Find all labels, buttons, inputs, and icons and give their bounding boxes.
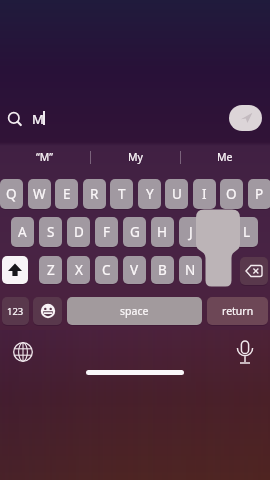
staticText: Y [146,185,154,203]
staticText: J [189,223,193,241]
staticText: F [103,223,111,241]
button[interactable]: B [151,256,174,284]
button[interactable]: C [95,256,118,284]
staticText: W [33,185,46,203]
button[interactable] [33,297,62,325]
button[interactable]: My [90,145,180,169]
staticText: I [202,185,207,203]
staticText: B [158,261,167,279]
staticText: P [255,185,264,203]
staticText: My [128,150,143,164]
button[interactable]: Me [180,145,270,169]
button[interactable] [240,257,268,285]
button[interactable] [229,105,262,131]
button[interactable]: X [67,256,90,284]
staticText: S [47,223,55,241]
button[interactable]: T [110,179,133,209]
staticText: L [243,223,251,241]
button[interactable] [2,256,28,284]
button[interactable]: Y [138,179,161,209]
button[interactable]: 123 [2,297,29,325]
button[interactable]: V [123,256,146,284]
button[interactable]: W [28,179,51,209]
staticText: “M” [36,150,54,164]
staticText: E [63,185,71,203]
button[interactable]: A [11,217,34,247]
button[interactable]: D [67,217,90,247]
staticText: V [130,261,139,279]
staticText: O [226,185,237,203]
button[interactable]: H [151,217,174,247]
staticText: space [120,304,149,318]
button[interactable]: Q [0,179,23,209]
staticText: Z [47,261,55,279]
staticText: N [185,261,196,279]
staticText: X [75,261,83,279]
button[interactable]: E [55,179,78,209]
button[interactable]: F [95,217,118,247]
button[interactable]: return [207,297,268,325]
staticText: U [172,185,182,203]
button[interactable] [235,339,255,366]
staticText: Q [6,185,17,203]
staticText: R [90,185,99,203]
staticText: Me [217,150,233,164]
button[interactable]: R [83,179,106,209]
staticText: T [118,185,126,203]
button[interactable]: L [235,217,258,247]
button[interactable]: N [179,256,202,284]
button[interactable]: O [220,179,243,209]
button[interactable]: S [39,217,62,247]
button[interactable]: G [123,217,146,247]
button[interactable]: P [248,179,270,209]
staticText: D [74,223,84,241]
button[interactable]: I [193,179,216,209]
button[interactable]: U [165,179,188,209]
button[interactable] [13,342,33,362]
staticText: H [157,223,168,241]
staticText: M [32,110,44,128]
staticText: A [18,223,27,241]
button[interactable]: Z [39,256,62,284]
staticText: G [130,223,140,241]
staticText: 123 [7,305,24,318]
button[interactable]: space [67,297,202,325]
button[interactable]: “M” [0,145,90,169]
staticText: return [222,304,254,318]
button[interactable]: J [179,217,202,247]
staticText: C [102,261,111,279]
